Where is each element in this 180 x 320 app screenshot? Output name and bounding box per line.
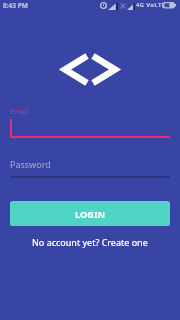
button[interactable]: LOGIN bbox=[10, 201, 170, 226]
staticText: 4G VoLTE bbox=[136, 1, 166, 9]
button[interactable]: Password bbox=[10, 158, 170, 178]
button[interactable]: No account yet? Create one bbox=[32, 236, 148, 248]
button[interactable]: Email bbox=[10, 107, 170, 138]
staticText: LOGIN bbox=[75, 208, 106, 220]
staticText: Password bbox=[10, 158, 51, 170]
staticText: Email bbox=[10, 107, 29, 117]
staticText: 8:43 PM bbox=[3, 1, 28, 10]
